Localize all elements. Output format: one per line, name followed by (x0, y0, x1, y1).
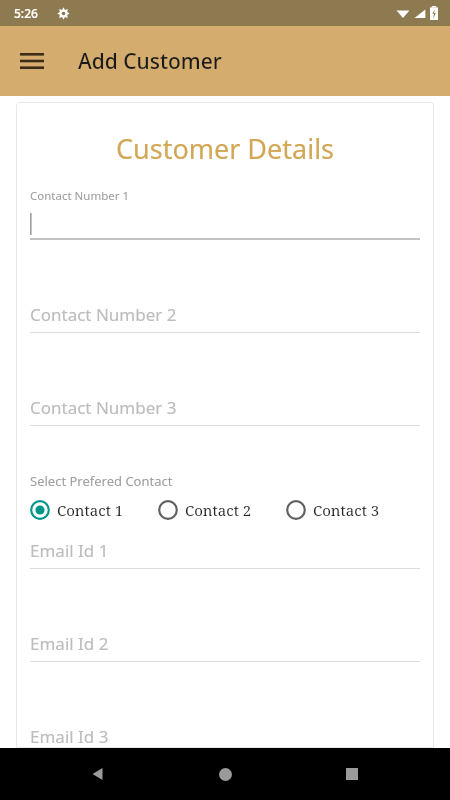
staticText: Contact Number 1 (30, 188, 130, 204)
staticText: Contact 1 (57, 500, 124, 520)
button[interactable]: Email Id 2 (30, 632, 420, 662)
button[interactable]: Email Id 1 (30, 539, 420, 569)
button[interactable]: Back (78, 754, 118, 794)
staticText: Email Id 3 (30, 725, 109, 748)
button[interactable]: Contact Number 3 (30, 396, 420, 426)
button[interactable]: Recent apps (332, 754, 372, 794)
button[interactable]: Contact Number 1 (30, 188, 420, 240)
staticText: Select Prefered Contact (30, 472, 173, 490)
staticText: Add Customer (78, 47, 222, 76)
staticText: Contact 2 (185, 500, 252, 520)
staticText: Email Id 1 (30, 539, 109, 562)
button[interactable]: Contact 1 (30, 500, 158, 520)
staticText: Contact Number 2 (30, 303, 177, 326)
button[interactable]: Open navigation menu (8, 37, 56, 85)
staticText: Email Id 2 (30, 632, 109, 655)
button[interactable]: Contact 2 (158, 500, 286, 520)
button[interactable]: Contact 3 (286, 500, 380, 520)
button[interactable]: Contact Number 2 (30, 303, 420, 333)
staticText: Customer Details (30, 130, 420, 167)
staticText: Contact Number 3 (30, 396, 177, 419)
staticText: Contact 3 (313, 500, 380, 520)
staticText: 5:26 (14, 5, 38, 21)
button[interactable]: Home (205, 754, 245, 794)
